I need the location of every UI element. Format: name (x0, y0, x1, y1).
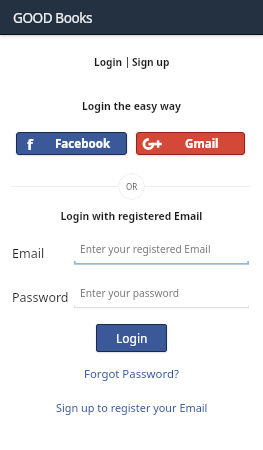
staticText: Gmail (185, 136, 219, 152)
staticText: Login the easy way (0, 99, 263, 113)
staticText: Enter your password (80, 286, 179, 300)
staticText: Enter your registered Email (80, 242, 211, 256)
button[interactable]: Login (94, 55, 123, 69)
button[interactable]: f (16, 132, 127, 155)
button[interactable]: Sign up (132, 55, 170, 69)
button[interactable]: Forgot Password? (84, 366, 179, 382)
other: Google plus (142, 138, 158, 150)
button[interactable]: Sign up to register your Email (56, 400, 208, 415)
button[interactable]: Enter your password (74, 284, 249, 311)
staticText: OR (126, 181, 138, 192)
staticText: f (27, 134, 33, 154)
staticText: GOOD Books (13, 8, 93, 27)
staticText: Facebook (55, 136, 111, 152)
staticText: Login (116, 330, 148, 346)
staticText: Login with registered Email (0, 209, 263, 223)
button[interactable]: Login (96, 324, 167, 352)
button[interactable]: Google plus (136, 132, 245, 155)
staticText: Password (12, 289, 69, 306)
staticText: Email (12, 245, 45, 262)
button[interactable]: Enter your registered Email (74, 240, 249, 267)
